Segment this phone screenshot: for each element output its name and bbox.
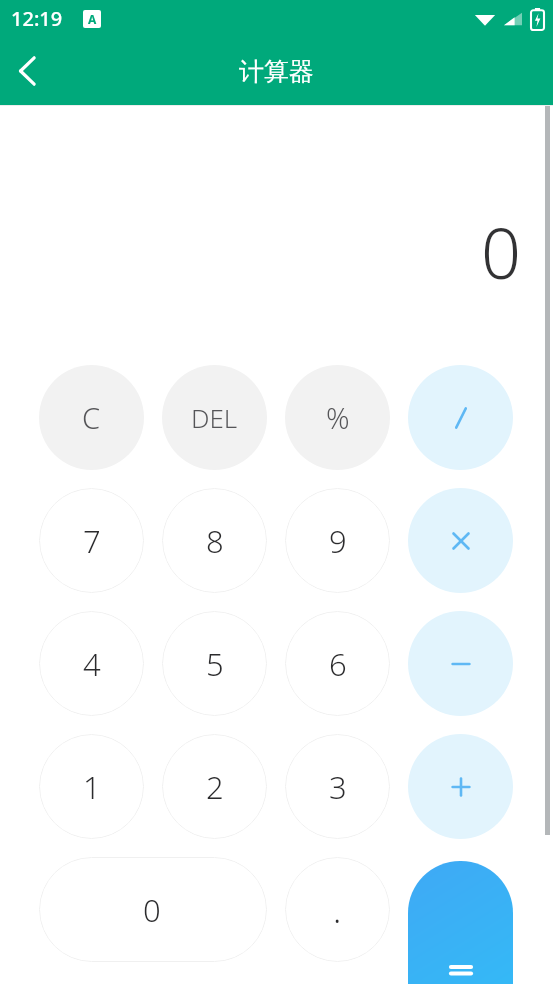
staticText: 3 (329, 766, 347, 808)
staticText: 4 (83, 643, 101, 685)
button[interactable]: 6 (285, 611, 390, 716)
staticText: 9 (329, 520, 347, 562)
staticText: 6 (329, 643, 347, 685)
staticText: 1 (83, 766, 101, 808)
staticText: 5 (206, 643, 224, 685)
button[interactable]: C (39, 365, 144, 470)
staticText: 0 (143, 889, 161, 931)
button[interactable]: 7 (39, 488, 144, 593)
button[interactable]: Back (0, 43, 56, 99)
staticText: 2 (206, 766, 224, 808)
button[interactable]: 1 (39, 734, 144, 839)
button[interactable]: 0 (39, 857, 267, 962)
button[interactable]: % (285, 365, 390, 470)
staticText: A (88, 11, 97, 27)
staticText: 7 (83, 520, 101, 562)
button[interactable]: 3 (285, 734, 390, 839)
button[interactable]: Divide (408, 365, 513, 470)
staticText: 8 (206, 520, 224, 562)
staticText: % (326, 398, 350, 437)
button[interactable]: . (285, 857, 390, 962)
button[interactable]: Equals (408, 861, 513, 984)
staticText: 0 (481, 204, 521, 299)
staticText: 12:19 (11, 5, 63, 32)
button[interactable]: 8 (162, 488, 267, 593)
button[interactable]: Multiply (408, 488, 513, 593)
button[interactable]: Minus (408, 611, 513, 716)
staticText: DEL (191, 400, 238, 435)
staticText: . (333, 887, 342, 933)
button[interactable]: 2 (162, 734, 267, 839)
button[interactable]: 9 (285, 488, 390, 593)
staticText: 计算器 (239, 56, 314, 87)
button[interactable]: DEL (162, 365, 267, 470)
button[interactable]: Plus (408, 734, 513, 839)
staticText: C (82, 398, 101, 437)
button[interactable]: 5 (162, 611, 267, 716)
button[interactable]: 4 (39, 611, 144, 716)
